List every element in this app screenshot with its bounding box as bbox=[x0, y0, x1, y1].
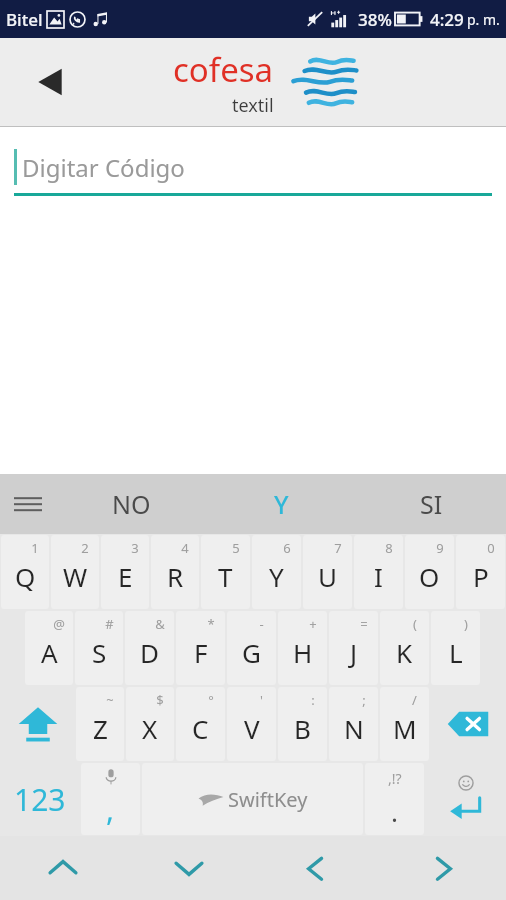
button[interactable]: Previous bbox=[252, 836, 379, 900]
button[interactable]: , bbox=[81, 763, 140, 835]
button[interactable]: SI bbox=[356, 474, 506, 534]
staticText: 4 bbox=[181, 539, 189, 557]
button[interactable]: 9 bbox=[405, 535, 454, 609]
staticText: textil bbox=[232, 93, 274, 118]
staticText: 5 bbox=[232, 539, 240, 557]
staticText: N bbox=[344, 711, 364, 746]
staticText: + bbox=[309, 615, 317, 633]
staticText: , bbox=[106, 789, 115, 830]
staticText: 3 bbox=[131, 539, 139, 557]
staticText: ,!? bbox=[388, 769, 402, 788]
staticText: 7 bbox=[334, 539, 342, 557]
staticText: Bitel bbox=[6, 8, 43, 31]
staticText: $ bbox=[156, 691, 164, 709]
button[interactable]: # bbox=[75, 611, 123, 685]
staticText: E bbox=[118, 559, 133, 594]
staticText: ( bbox=[413, 615, 417, 633]
staticText: I bbox=[374, 559, 383, 594]
button[interactable]: 8 bbox=[354, 535, 403, 609]
staticText: D bbox=[140, 635, 159, 670]
button[interactable]: Next bbox=[379, 836, 506, 900]
button[interactable]: @ bbox=[25, 611, 73, 685]
staticText: W bbox=[63, 559, 88, 594]
staticText: T bbox=[218, 559, 233, 594]
staticText: L bbox=[449, 635, 463, 670]
staticText: = bbox=[360, 615, 368, 633]
button[interactable]: : bbox=[278, 687, 327, 761]
button[interactable]: $ bbox=[126, 687, 174, 761]
staticText: 9 bbox=[436, 539, 444, 557]
staticText: SwiftKey bbox=[228, 786, 308, 813]
button[interactable]: ~ bbox=[76, 687, 124, 761]
staticText: A bbox=[41, 635, 58, 670]
staticText: J bbox=[350, 635, 358, 670]
staticText: 2 bbox=[81, 539, 89, 557]
staticText: & bbox=[155, 615, 165, 633]
button[interactable]: + bbox=[278, 611, 327, 685]
staticText: G bbox=[242, 635, 261, 670]
staticText: NO bbox=[112, 487, 151, 521]
staticText: S bbox=[92, 635, 107, 670]
staticText: cofesa bbox=[173, 47, 274, 92]
button[interactable]: = bbox=[329, 611, 378, 685]
staticText: Y bbox=[274, 487, 289, 521]
button[interactable]: & bbox=[125, 611, 174, 685]
button[interactable]: Up bbox=[0, 836, 126, 900]
staticText: ~ bbox=[106, 691, 114, 709]
button[interactable]: - bbox=[227, 611, 276, 685]
staticText: / bbox=[412, 691, 417, 709]
button[interactable]: SwiftKey bbox=[142, 763, 363, 835]
staticText: P bbox=[473, 559, 489, 594]
button[interactable]: Menu bbox=[0, 474, 56, 534]
staticText: ; bbox=[362, 691, 366, 709]
staticText: SI bbox=[420, 487, 443, 521]
staticText: p. m. bbox=[467, 10, 500, 29]
staticText: # bbox=[105, 615, 114, 633]
button[interactable]: Enter bbox=[426, 763, 505, 835]
staticText: ' bbox=[260, 691, 263, 709]
button[interactable]: Y bbox=[206, 474, 356, 534]
button[interactable]: 0 bbox=[456, 535, 505, 609]
button[interactable]: 123 bbox=[1, 763, 79, 835]
button[interactable]: ( bbox=[380, 611, 429, 685]
staticText: O bbox=[419, 559, 440, 594]
staticText: : bbox=[311, 691, 315, 709]
staticText: ) bbox=[464, 615, 468, 633]
staticText: 1 bbox=[31, 539, 39, 557]
staticText: X bbox=[142, 711, 158, 746]
button[interactable]: Down bbox=[126, 836, 252, 900]
button[interactable]: 1 bbox=[1, 535, 49, 609]
staticText: * bbox=[207, 615, 215, 633]
staticText: H bbox=[293, 635, 313, 670]
staticText: R bbox=[167, 559, 184, 594]
button[interactable]: Shift bbox=[1, 687, 74, 761]
staticText: K bbox=[396, 635, 413, 670]
button[interactable]: NO bbox=[56, 474, 206, 534]
button[interactable]: * bbox=[176, 611, 225, 685]
staticText: 4:29 bbox=[430, 8, 464, 31]
button[interactable]: Back bbox=[20, 52, 80, 112]
button[interactable]: ) bbox=[431, 611, 480, 685]
staticText: @ bbox=[53, 615, 65, 633]
button[interactable]: 5 bbox=[201, 535, 250, 609]
button[interactable]: ° bbox=[176, 687, 225, 761]
button[interactable]: Backspace bbox=[431, 687, 505, 761]
staticText: U bbox=[318, 559, 338, 594]
button[interactable]: / bbox=[380, 687, 429, 761]
staticText: 0 bbox=[487, 539, 495, 557]
button[interactable]: Digitar Código bbox=[14, 149, 492, 185]
button[interactable]: 4 bbox=[151, 535, 199, 609]
button[interactable]: 6 bbox=[252, 535, 301, 609]
staticText: 6 bbox=[283, 539, 291, 557]
button[interactable]: 3 bbox=[101, 535, 149, 609]
button[interactable]: ,!? bbox=[365, 763, 424, 835]
staticText: C bbox=[192, 711, 209, 746]
staticText: ° bbox=[208, 691, 214, 709]
staticText: Q bbox=[15, 559, 36, 594]
staticText: . bbox=[391, 794, 398, 829]
staticText: 123 bbox=[14, 779, 66, 820]
button[interactable]: 2 bbox=[51, 535, 99, 609]
button[interactable]: ; bbox=[329, 687, 378, 761]
button[interactable]: ' bbox=[227, 687, 276, 761]
button[interactable]: 7 bbox=[303, 535, 352, 609]
